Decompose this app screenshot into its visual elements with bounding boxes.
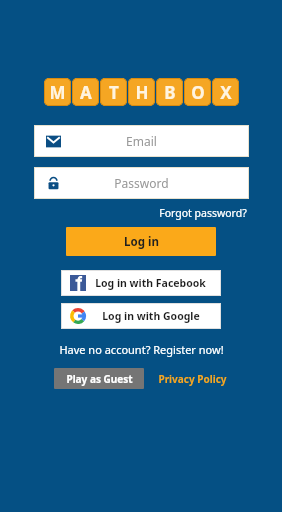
button[interactable]: Password [34, 167, 249, 199]
staticText: H [135, 81, 149, 104]
staticText: Have no account? Register now! [59, 342, 224, 357]
staticText: X [220, 81, 232, 104]
staticText: Log in with Facebook [95, 276, 206, 290]
staticText: Privacy Policy [158, 372, 227, 386]
staticText: Log in [124, 234, 159, 250]
staticText: M [49, 81, 66, 104]
staticText: T [109, 81, 119, 104]
staticText: Email [126, 133, 157, 149]
staticText: Log in with Google [102, 309, 200, 323]
button[interactable]: Have no account? Register now! [56, 340, 227, 359]
staticText: A [80, 81, 92, 104]
button[interactable]: Play as Guest [54, 368, 144, 389]
staticText: Play as Guest [66, 372, 133, 386]
staticText: Forgot password? [159, 206, 247, 220]
button[interactable]: Forgot password? [157, 204, 249, 222]
staticText: Password [114, 175, 169, 191]
button[interactable]: Email [34, 125, 249, 157]
button[interactable]: Log in with Google [61, 303, 221, 329]
button[interactable]: Log in with Facebook [61, 270, 221, 296]
button[interactable]: Privacy Policy [156, 370, 229, 388]
button[interactable]: Log in [66, 227, 216, 256]
staticText: O [191, 81, 205, 104]
staticText: B [164, 81, 176, 104]
